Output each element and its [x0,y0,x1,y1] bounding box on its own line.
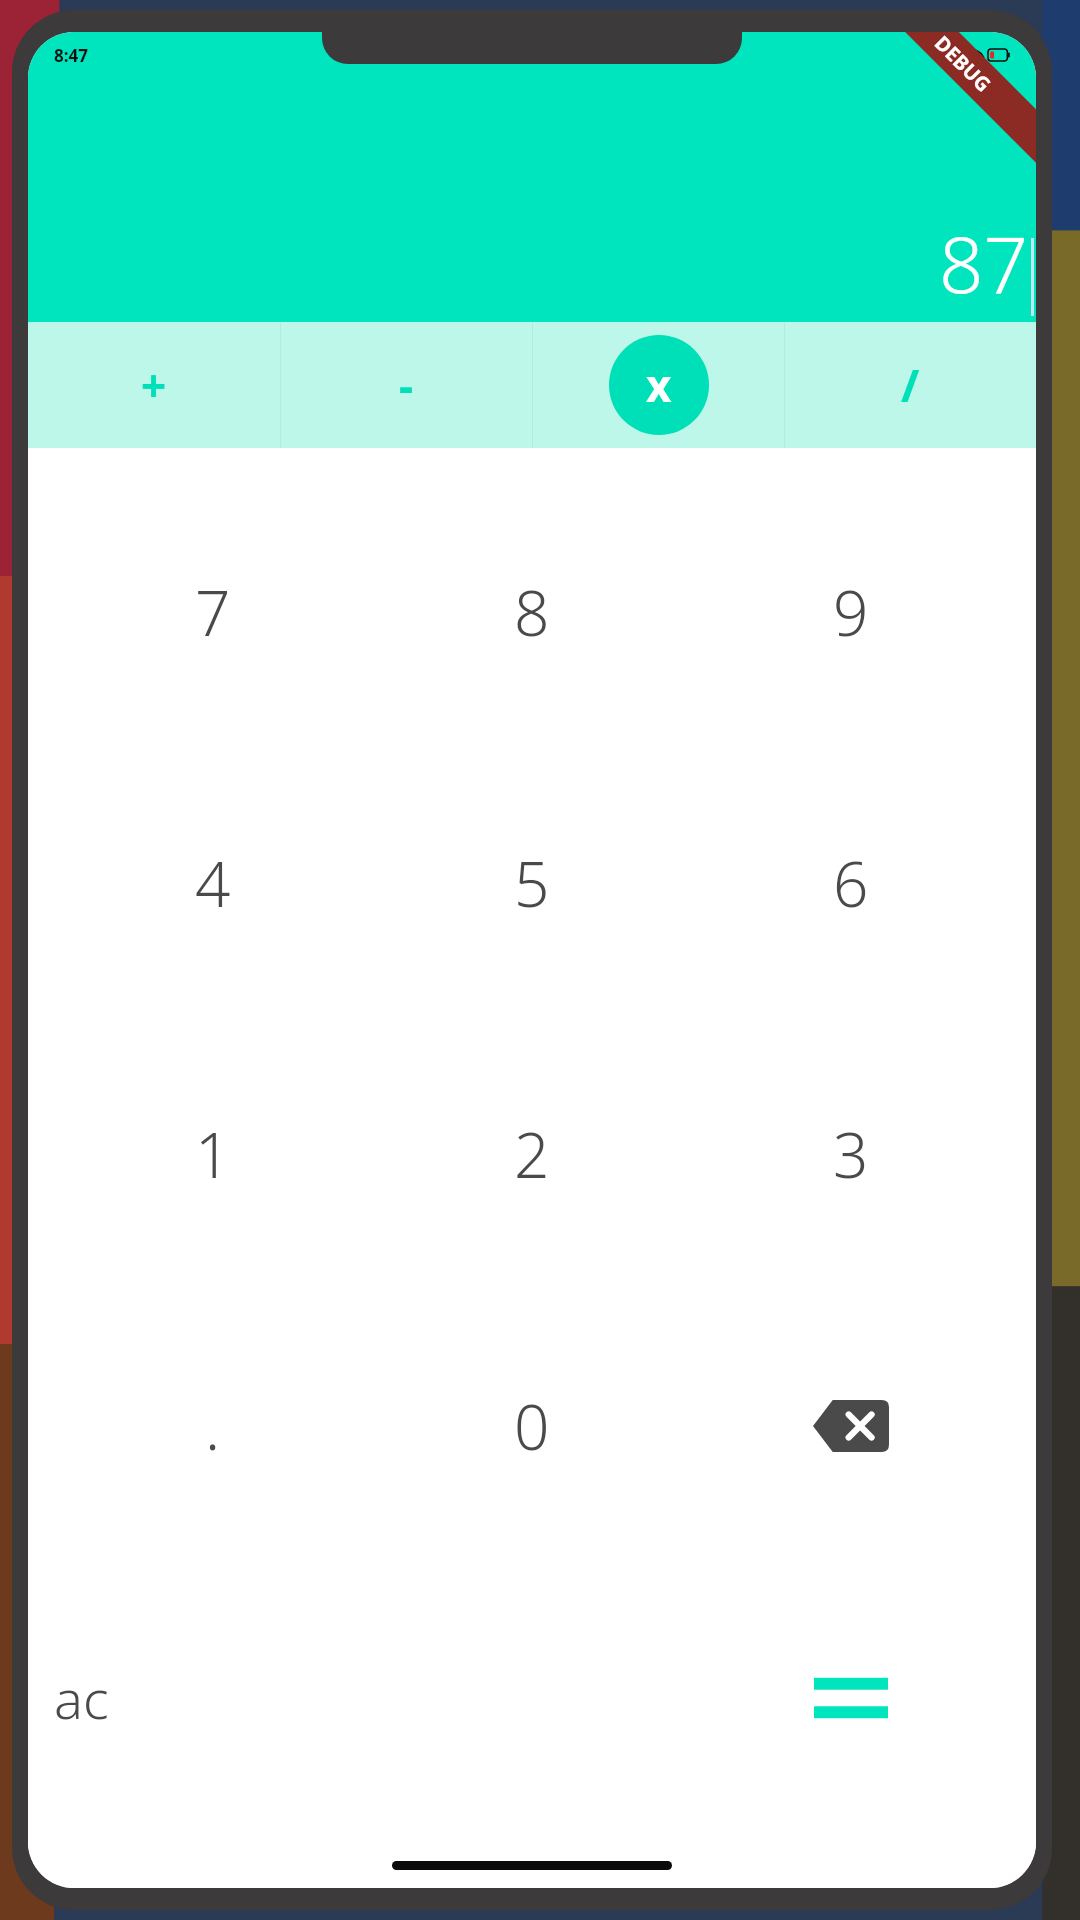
button[interactable]: 7 [54,476,372,747]
button[interactable]: / [785,322,1036,448]
staticText: x [646,355,672,415]
staticText: 9 [833,570,869,654]
staticText: 0 [514,1384,550,1468]
button[interactable]: - [281,322,532,448]
button[interactable]: 0 [372,1290,691,1562]
staticText: ac [54,1661,109,1735]
staticText: 6 [833,841,869,925]
staticText: + [141,355,167,415]
button[interactable]: Equals [691,1562,1010,1834]
staticText: / [901,355,920,415]
button[interactable]: 6 [691,747,1010,1018]
staticText: 87 [938,210,1028,316]
button[interactable]: x [533,322,784,448]
button[interactable]: + [28,322,280,448]
staticText: 4 [195,841,231,925]
button[interactable]: 9 [691,476,1010,747]
staticText: 5 [514,841,550,925]
button[interactable]: 1 [54,1018,372,1290]
button[interactable]: 2 [372,1018,691,1290]
staticText: 8:47 [54,44,88,67]
button[interactable]: 8 [372,476,691,747]
button[interactable]: ac [54,1562,372,1834]
staticText: DEBUG [929,32,997,98]
button[interactable]: Backspace [691,1290,1010,1562]
staticText: 1 [195,1112,231,1196]
button[interactable]: 3 [691,1018,1010,1290]
staticText: 8 [514,570,550,654]
button[interactable]: 5 [372,747,691,1018]
staticText: 3 [833,1112,869,1196]
button[interactable]: 4 [54,747,372,1018]
staticText: 7 [195,570,231,654]
staticText: - [399,355,414,415]
staticText: 2 [514,1112,550,1196]
staticText: . [205,1384,221,1468]
